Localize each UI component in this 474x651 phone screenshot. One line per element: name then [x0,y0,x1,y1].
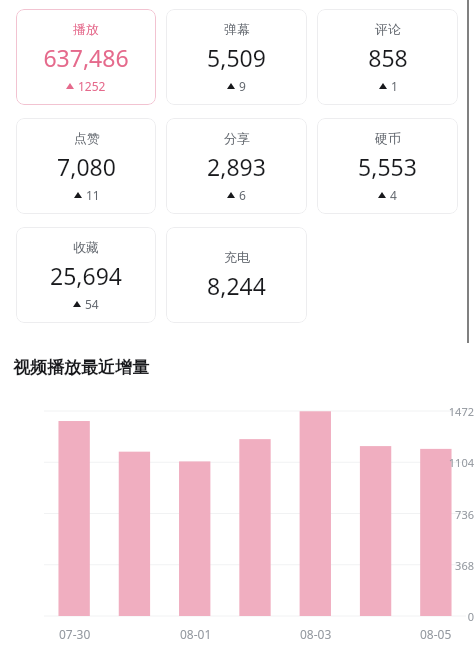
staticText: 分享 [224,130,250,146]
staticText: 25,694 [50,260,122,291]
button[interactable]: 收藏 [16,227,156,323]
staticText: 5,553 [358,151,417,182]
staticText: 收藏 [73,239,99,255]
staticText: 0 [0,609,474,624]
staticText: 08-01 [180,626,212,642]
staticText: 点赞 [74,130,100,146]
button[interactable]: 评论 [317,9,458,105]
staticText: 5,509 [207,42,266,73]
staticText: 8,244 [207,270,266,301]
staticText: 9 [239,78,246,94]
staticText: 07-30 [59,626,91,642]
staticText: 637,486 [43,42,129,73]
staticText: 368 [0,558,474,573]
button[interactable]: 充电 [166,227,307,323]
staticText: 54 [85,296,99,312]
button[interactable]: 硬币 [317,118,458,214]
staticText: 评论 [375,21,401,37]
staticText: 1472 [0,404,474,419]
staticText: 1 [391,78,398,94]
staticText: 08-03 [300,626,332,642]
button[interactable]: 弹幕 [166,9,307,105]
staticText: 硬币 [375,130,401,146]
staticText: 858 [368,42,408,73]
staticText: 08-05 [420,626,452,642]
staticText: 1104 [0,455,474,470]
staticText: 736 [0,507,474,522]
staticText: 充电 [224,249,250,265]
staticText: 4 [390,187,397,203]
staticText: 11 [86,187,100,203]
staticText: 2,893 [207,151,266,182]
button[interactable]: 点赞 [16,118,156,214]
staticText: 1252 [78,78,106,94]
staticText: 播放 [73,21,99,37]
staticText: 弹幕 [224,21,250,37]
button[interactable]: 播放 [16,9,156,105]
staticText: 视频播放最近增量 [13,357,149,378]
staticText: 6 [239,187,246,203]
staticText: 7,080 [57,151,116,182]
button[interactable]: 分享 [166,118,307,214]
